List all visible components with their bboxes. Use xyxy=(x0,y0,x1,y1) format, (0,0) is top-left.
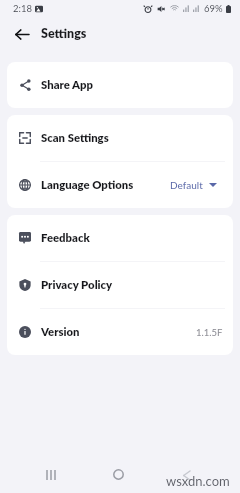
staticText: wsxdn.com xyxy=(166,473,230,489)
button[interactable]: Home xyxy=(107,463,130,486)
button[interactable]: Scan Settings xyxy=(7,115,233,161)
button[interactable]: Share App xyxy=(7,62,233,108)
staticText: 1.1.5F xyxy=(196,327,223,338)
button[interactable]: Back xyxy=(9,21,35,47)
button[interactable]: Feedback xyxy=(7,215,233,261)
staticText: Privacy Policy xyxy=(41,278,113,292)
staticText: Scan Settings xyxy=(41,131,109,145)
staticText: 69% xyxy=(204,3,223,14)
staticText: Version xyxy=(41,325,80,339)
staticText: Settings xyxy=(41,26,87,41)
staticText: Feedback xyxy=(41,231,90,245)
button[interactable]: Back xyxy=(175,464,198,487)
staticText: Share App xyxy=(41,78,94,92)
button[interactable]: Version xyxy=(7,309,233,355)
button[interactable]: Default xyxy=(170,179,223,191)
button[interactable]: Privacy Policy xyxy=(7,262,233,308)
staticText: Default xyxy=(170,179,203,191)
staticText: Language Options xyxy=(41,178,134,192)
staticText: 2:18 xyxy=(13,3,32,14)
button[interactable]: Language Options xyxy=(7,162,233,208)
button[interactable]: Recent apps xyxy=(39,463,62,486)
